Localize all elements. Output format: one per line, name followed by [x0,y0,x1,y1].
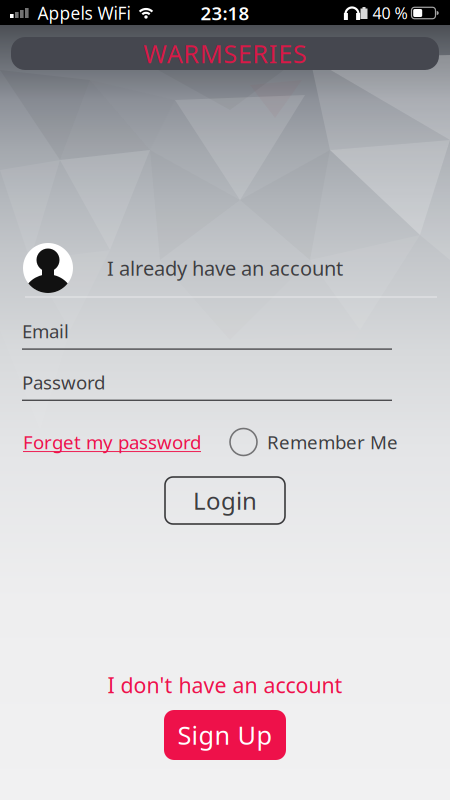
button[interactable]: Login [165,477,285,524]
staticText: I already have an account [107,255,343,281]
button[interactable]: Remember Me [230,428,398,455]
staticText: Appels WiFi [37,1,130,24]
staticText: Password [22,370,105,395]
staticText: Forget my password [23,430,201,454]
staticText: Sign Up [177,718,272,752]
staticText: Remember Me [267,430,398,454]
staticText: I don't have an account [107,671,342,699]
staticText: 23:18 [200,1,249,25]
button[interactable]: Forget my password [23,430,201,454]
button[interactable]: Password [22,370,392,401]
staticText: Login [193,485,257,516]
button[interactable]: Email [22,319,392,350]
button[interactable]: Sign Up [164,710,286,760]
staticText: Email [22,319,69,343]
staticText: WARMSERIES [143,37,307,70]
staticText: 40 % [372,2,407,24]
